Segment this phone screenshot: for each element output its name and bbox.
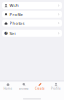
button[interactable]: Browse <box>16 83 32 90</box>
button[interactable]: Profile <box>2 11 62 18</box>
staticText: Create <box>35 87 45 90</box>
staticText: Wi-Fi <box>10 3 19 8</box>
staticText: Profile <box>51 87 61 90</box>
staticText: Profile <box>10 11 23 17</box>
button[interactable]: Photos <box>2 20 62 27</box>
staticText: Siri <box>10 30 16 36</box>
button[interactable]: Create <box>32 83 48 90</box>
staticText: Browse <box>19 87 29 90</box>
button[interactable]: ? <box>2 30 62 37</box>
button[interactable]: Wi-Fi <box>2 2 62 9</box>
button[interactable]: Home <box>0 83 16 90</box>
staticText: Photos <box>10 20 25 26</box>
staticText: Home <box>3 87 12 90</box>
button[interactable]: Profile <box>48 83 64 90</box>
